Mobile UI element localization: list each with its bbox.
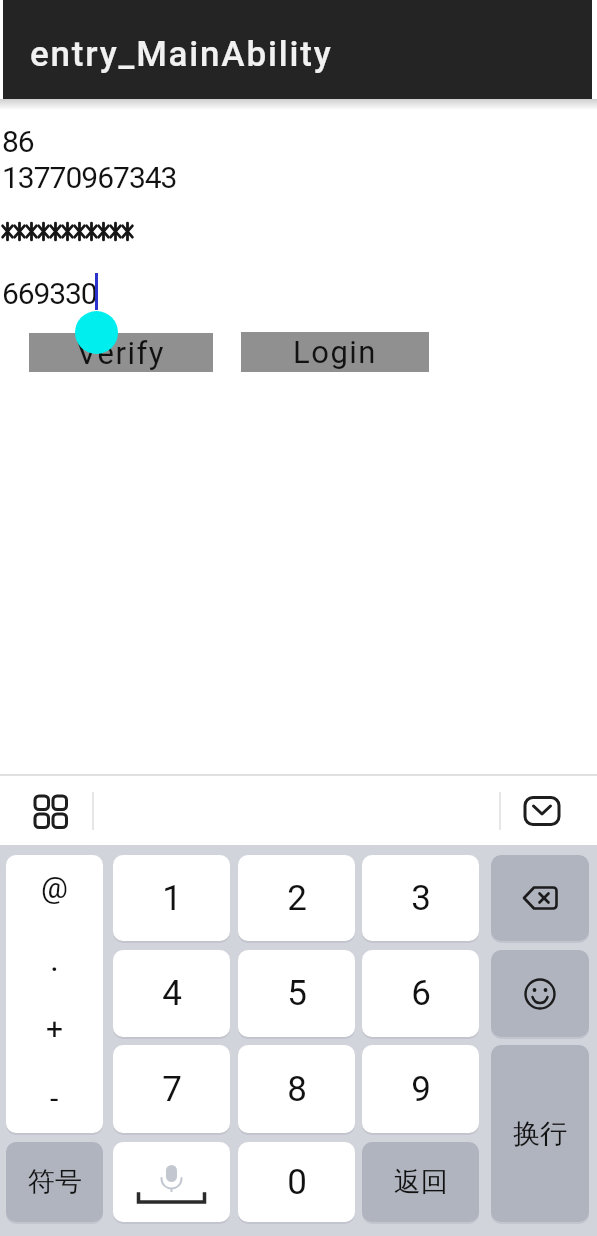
staticText: 6 bbox=[411, 973, 431, 1014]
staticText: 86 bbox=[2, 124, 34, 159]
button[interactable] bbox=[523, 795, 561, 827]
staticText: - bbox=[50, 1081, 59, 1116]
staticText: 0 bbox=[287, 1162, 307, 1203]
button[interactable]: 返回 bbox=[362, 1142, 479, 1222]
staticText: @ bbox=[41, 870, 68, 905]
staticText: + bbox=[46, 1011, 64, 1046]
staticText: 返回 bbox=[394, 1165, 448, 1199]
staticText: 符号 bbox=[28, 1165, 82, 1199]
button[interactable]: 7 bbox=[113, 1045, 230, 1133]
button[interactable]: 8 bbox=[238, 1045, 355, 1133]
staticText: entry_MainAbility bbox=[30, 34, 333, 75]
button[interactable]: 1 bbox=[113, 855, 230, 941]
staticText: 8 bbox=[287, 1069, 307, 1110]
staticText: 换行 bbox=[513, 1117, 567, 1151]
button[interactable]: 3 bbox=[362, 855, 479, 941]
button[interactable]: 9 bbox=[362, 1045, 479, 1133]
staticText: 2 bbox=[287, 878, 307, 919]
button[interactable] bbox=[491, 855, 589, 941]
staticText: 4 bbox=[162, 973, 182, 1014]
button[interactable]: 0 bbox=[238, 1142, 355, 1222]
staticText: . bbox=[50, 939, 59, 979]
staticText: Verify bbox=[77, 335, 165, 371]
staticText: 3 bbox=[411, 878, 431, 919]
button[interactable] bbox=[113, 1142, 230, 1222]
staticText: 13770967343 bbox=[2, 160, 177, 195]
button[interactable]: Login bbox=[241, 332, 429, 372]
button[interactable]: 符号 bbox=[6, 1142, 103, 1222]
staticText: 9 bbox=[411, 1069, 431, 1110]
button[interactable]: 4 bbox=[113, 950, 230, 1037]
button[interactable]: @ bbox=[6, 855, 103, 1133]
button[interactable] bbox=[491, 950, 589, 1037]
staticText: 669330 bbox=[2, 276, 97, 311]
staticText: 5 bbox=[287, 973, 307, 1014]
staticText: 7 bbox=[162, 1069, 182, 1110]
button[interactable]: 6 bbox=[362, 950, 479, 1037]
button[interactable]: 换行 bbox=[491, 1045, 589, 1222]
button[interactable]: 5 bbox=[238, 950, 355, 1037]
button[interactable] bbox=[33, 794, 71, 832]
button[interactable]: 2 bbox=[238, 855, 355, 941]
staticText: 1 bbox=[162, 878, 182, 919]
staticText: Login bbox=[293, 334, 377, 370]
button[interactable]: Verify bbox=[29, 333, 213, 372]
